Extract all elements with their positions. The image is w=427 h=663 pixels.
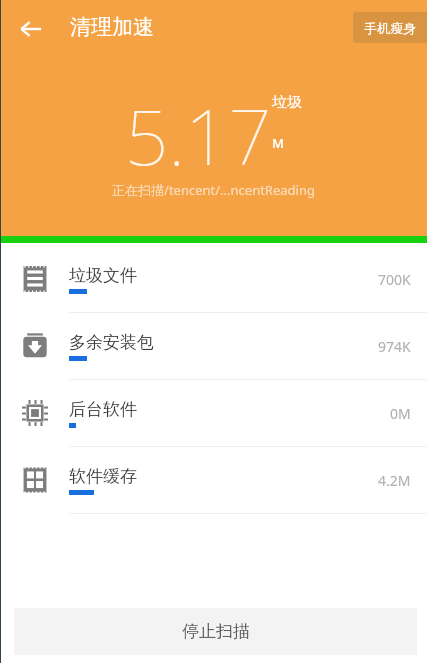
button[interactable]: 手机瘦身 <box>353 12 427 43</box>
staticText: 软件缓存 <box>69 466 137 487</box>
staticText: 700K <box>378 270 411 289</box>
staticText: 多余安装包 <box>69 332 154 353</box>
staticText: 974K <box>378 337 411 356</box>
staticText: 5.17 <box>125 84 272 188</box>
staticText: 0M <box>390 404 411 423</box>
staticText: 停止扫描 <box>182 621 250 642</box>
staticText: 垃圾文件 <box>69 265 137 286</box>
button[interactable]: Back <box>10 8 52 50</box>
button[interactable]: 多余安装包 <box>0 313 427 380</box>
staticText: 后台软件 <box>69 399 137 420</box>
staticText: 4.2M <box>378 471 411 490</box>
button[interactable]: 垃圾文件 <box>0 246 427 313</box>
staticText: 正在扫描/tencent/...ncentReading <box>112 181 315 199</box>
staticText: 垃圾 <box>272 93 302 112</box>
staticText: 手机瘦身 <box>364 20 416 36</box>
button[interactable]: 停止扫描 <box>14 608 417 655</box>
button[interactable]: 软件缓存 <box>0 447 427 514</box>
button[interactable]: 后台软件 <box>0 380 427 447</box>
staticText: M <box>272 134 284 152</box>
staticText: 清理加速 <box>70 14 154 40</box>
